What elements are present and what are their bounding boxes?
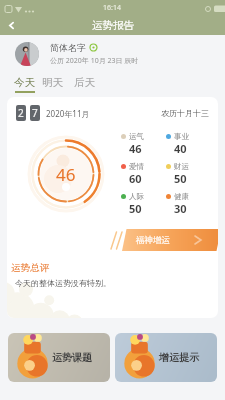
staticText: 事业: [174, 132, 189, 141]
staticText: 增运提示: [159, 351, 199, 364]
button[interactable]: 人际: [121, 192, 166, 216]
button[interactable]: 运气: [121, 132, 166, 156]
staticText: 明天: [42, 76, 63, 89]
staticText: 爱情: [129, 162, 144, 171]
staticText: 运势报告: [92, 19, 134, 32]
button[interactable]: 福神增运: [104, 229, 218, 251]
staticText: 后天: [74, 76, 95, 89]
staticText: 农历十月十三: [161, 108, 209, 118]
button[interactable]: 运势课题: [8, 333, 110, 382]
staticText: 16:14: [103, 3, 121, 13]
staticText: 2: [18, 106, 24, 120]
staticText: 60: [129, 171, 142, 186]
staticText: 50: [174, 171, 187, 186]
staticText: 财运: [174, 162, 189, 171]
staticText: 人际: [129, 192, 144, 201]
staticText: 40: [174, 141, 187, 156]
button[interactable]: 今天: [14, 72, 35, 93]
staticText: 运气: [129, 132, 144, 141]
staticText: 公历 2020年 10月 23日 辰时: [50, 56, 139, 66]
staticText: 2020年11月: [46, 108, 90, 119]
staticText: 今天的整体运势没有特别。: [15, 278, 111, 288]
button[interactable]: 事业: [166, 132, 211, 156]
staticText: 运势课题: [52, 351, 92, 364]
button[interactable]: 简体名字: [15, 35, 225, 72]
staticText: 7: [32, 106, 38, 120]
staticText: 今天: [14, 76, 35, 89]
staticText: 46: [56, 163, 76, 186]
staticText: 运势总评: [11, 262, 49, 274]
staticText: 30: [174, 201, 187, 216]
button[interactable]: 后天: [74, 72, 95, 93]
staticText: 46: [129, 141, 142, 156]
staticText: 健康: [174, 192, 189, 201]
staticText: 50: [129, 201, 142, 216]
button[interactable]: 财运: [166, 162, 211, 186]
button[interactable]: Back: [0, 16, 22, 35]
staticText: 福神增运: [136, 235, 170, 246]
button[interactable]: 明天: [42, 72, 63, 93]
button[interactable]: 爱情: [121, 162, 166, 186]
button[interactable]: 健康: [166, 192, 211, 216]
staticText: 简体名字: [50, 42, 86, 53]
button[interactable]: 增运提示: [115, 333, 217, 382]
